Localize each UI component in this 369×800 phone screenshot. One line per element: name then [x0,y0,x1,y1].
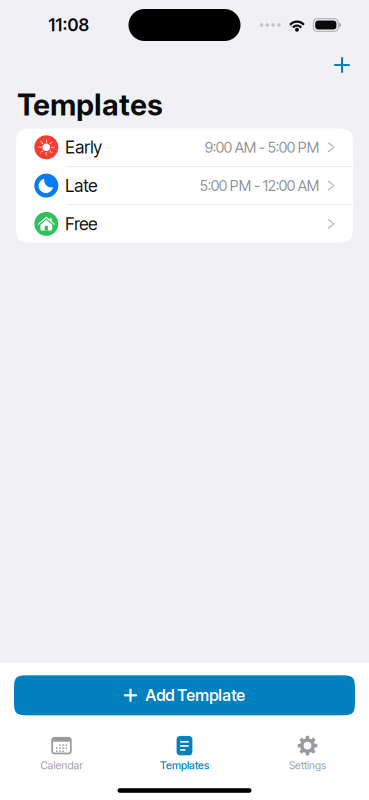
staticText: Templates [160,759,209,772]
staticText: Add Template [145,686,245,705]
staticText: 5:00 PM - 12:00 AM [200,177,319,194]
staticText: Settings [289,759,326,772]
button[interactable]: Calendar [0,734,123,774]
staticText: 9:00 AM - 5:00 PM [205,138,319,156]
staticText: Free [65,213,97,234]
button[interactable]: Late [16,167,353,205]
staticText: Calendar [40,759,82,772]
button[interactable]: Add Template [14,675,355,715]
button[interactable]: Free [16,205,353,243]
button[interactable]: Add template [320,50,364,80]
button[interactable]: Templates [123,734,246,774]
staticText: Templates [17,87,163,122]
staticText: Late [65,175,97,196]
button[interactable]: Early [16,128,353,167]
button[interactable]: Settings [246,734,369,774]
staticText: 11:08 [48,14,89,35]
staticText: Early [65,137,102,158]
